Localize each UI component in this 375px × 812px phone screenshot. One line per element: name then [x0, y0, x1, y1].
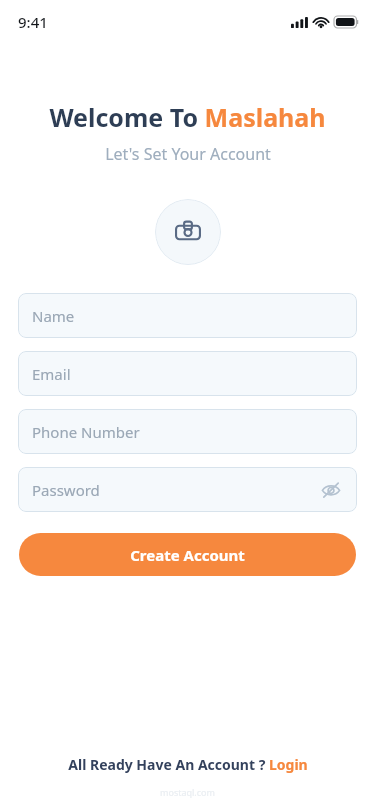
- staticText: Email: [32, 364, 71, 384]
- button[interactable]: Add profile photo: [155, 199, 221, 265]
- button[interactable]: Name: [18, 293, 357, 338]
- staticText: Create Account: [130, 545, 245, 565]
- button[interactable]: Show password: [319, 478, 343, 502]
- staticText: 9:41: [18, 12, 48, 32]
- staticText: Let's Set Your Account: [105, 143, 271, 165]
- staticText: Password: [32, 480, 100, 500]
- button[interactable]: Create Account: [19, 533, 356, 576]
- button[interactable]: Phone Number: [18, 409, 357, 454]
- staticText: Name: [32, 306, 75, 326]
- staticText: Welcome To Maslahah: [49, 100, 326, 134]
- button[interactable]: Password: [18, 467, 357, 512]
- staticText: mostaql.com: [160, 786, 215, 798]
- staticText: All Ready Have An Account ? Login: [68, 755, 308, 774]
- button[interactable]: All Ready Have An Account ? Login: [0, 755, 375, 774]
- staticText: Phone Number: [32, 422, 140, 442]
- button[interactable]: Email: [18, 351, 357, 396]
